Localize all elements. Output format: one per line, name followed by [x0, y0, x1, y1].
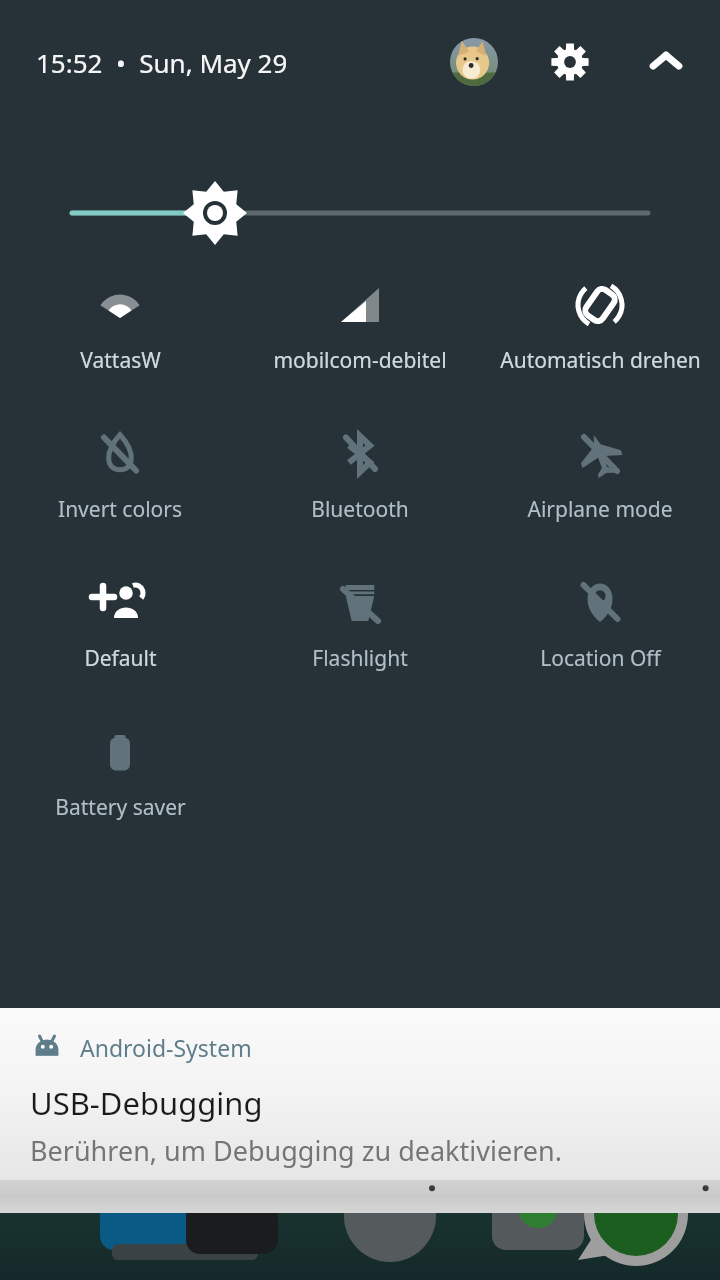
- staticText: Battery saver: [55, 793, 186, 822]
- button[interactable]: Location Off: [480, 578, 720, 673]
- staticText: Bluetooth: [311, 495, 409, 524]
- staticText: 15:52 • Sun, May 29: [36, 45, 288, 80]
- staticText: Automatisch drehen: [500, 346, 701, 375]
- button[interactable]: Bluetooth: [240, 429, 480, 524]
- staticText: Android-System: [80, 1032, 252, 1063]
- button[interactable]: Flashlight: [240, 578, 480, 673]
- staticText: Berühren, um Debugging zu deaktivieren.: [30, 1132, 562, 1169]
- button[interactable]: Automatisch drehen: [480, 280, 720, 375]
- button[interactable]: VattasW: [0, 280, 240, 375]
- button[interactable]: Airplane mode: [480, 429, 720, 524]
- button[interactable]: mobilcom-debitel: [240, 280, 480, 375]
- button[interactable]: Android-System: [0, 1008, 720, 1180]
- button[interactable]: [0, 1180, 720, 1213]
- staticText: USB-Debugging: [30, 1082, 263, 1124]
- button[interactable]: Settings: [546, 38, 594, 86]
- button[interactable]: Invert colors: [0, 429, 240, 524]
- button[interactable]: Battery saver: [0, 727, 240, 822]
- staticText: Flashlight: [312, 644, 408, 673]
- button[interactable]: Collapse: [642, 38, 690, 86]
- button[interactable]: Default: [0, 578, 240, 673]
- button[interactable]: Brightness: [0, 188, 720, 248]
- staticText: Invert colors: [58, 495, 182, 524]
- button[interactable]: User profile: [450, 38, 498, 86]
- staticText: Airplane mode: [527, 495, 673, 524]
- staticText: Default: [84, 644, 157, 673]
- staticText: Location Off: [540, 644, 661, 673]
- staticText: VattasW: [80, 346, 161, 375]
- staticText: mobilcom-debitel: [273, 346, 447, 375]
